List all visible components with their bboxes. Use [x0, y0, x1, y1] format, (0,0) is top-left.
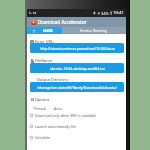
staticText: Threads	[33, 106, 47, 111]
staticText: Auto	[54, 106, 62, 111]
button[interactable]: Enter URL:	[30, 39, 54, 44]
button[interactable]: Threads	[33, 106, 132, 111]
staticText: Service Running	[80, 28, 108, 33]
staticText: 10:41	[113, 10, 124, 16]
other: Options	[31, 98, 34, 101]
staticText: http://ubuntu.mirrors.proxad.net/16.04/u…	[40, 46, 115, 51]
staticText: Download only when WiFi is available	[35, 113, 97, 118]
staticText: Download Accelerator	[38, 19, 87, 25]
staticText: Enter URL:	[35, 39, 54, 44]
staticText: FileName:	[35, 58, 54, 63]
staticText: 34%	[101, 11, 109, 16]
button[interactable]: /storage/emulated/0/Nanfy/Downloads/ubun…	[30, 82, 124, 92]
other: Main tab	[32, 29, 36, 33]
staticText: ubuntu-16.04-desktop-amd64.iso	[50, 66, 105, 71]
staticText: MAIN	[43, 28, 53, 33]
button[interactable]: Output Directory:	[37, 77, 69, 82]
staticText: /storage/emulated/0/Nanfy/Downloads/ubun…	[37, 85, 117, 90]
button[interactable]: Main tab	[27, 27, 62, 34]
staticText: Output Directory:	[37, 77, 69, 82]
button[interactable]: Launch automatically file	[30, 124, 129, 129]
button[interactable]: http://ubuntu.mirrors.proxad.net/16.04/u…	[30, 43, 124, 53]
staticText: Schedule	[35, 135, 50, 140]
staticText: Options	[35, 97, 50, 102]
button[interactable]: FileName:	[31, 58, 54, 63]
button[interactable]: Download only when WiFi is available	[30, 113, 129, 118]
button[interactable]: Options	[31, 97, 50, 102]
staticText: Launch automatically file	[35, 124, 76, 129]
button[interactable]: ubuntu-16.04-desktop-amd64.iso	[30, 63, 124, 73]
button[interactable]: Schedule	[30, 135, 129, 140]
